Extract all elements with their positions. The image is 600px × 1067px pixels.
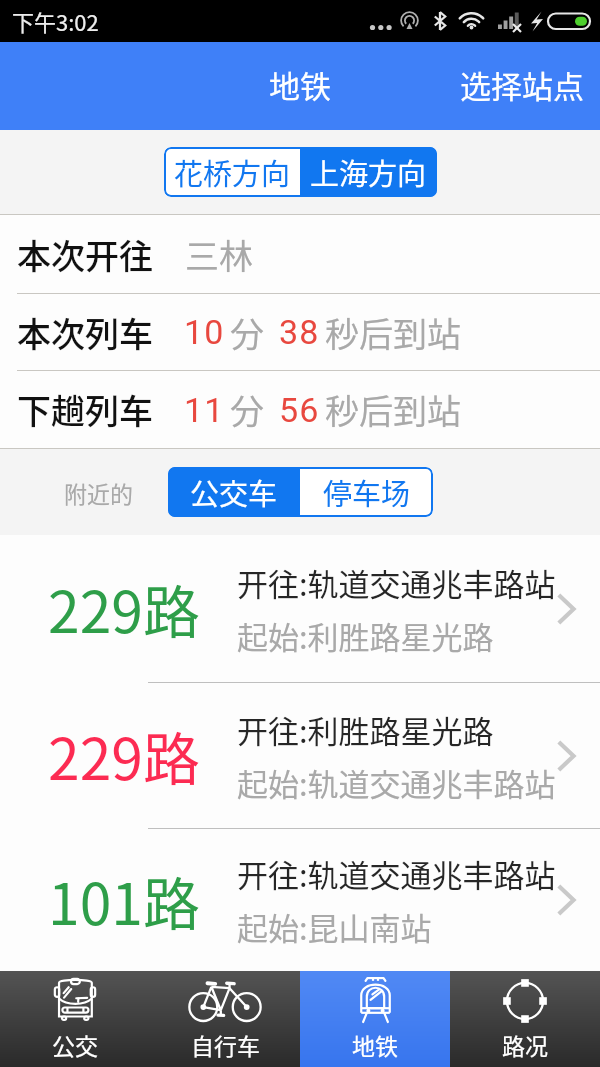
staticText: 229路 bbox=[48, 567, 200, 650]
staticText: 11 bbox=[184, 390, 225, 430]
button[interactable]: 229路 bbox=[0, 683, 600, 828]
staticText: 56 bbox=[279, 390, 320, 430]
other: 详情 bbox=[557, 742, 575, 770]
button[interactable]: 公交 bbox=[0, 971, 150, 1067]
staticText: 229路 bbox=[48, 714, 200, 797]
staticText: 开往:轨道交通兆丰路站 bbox=[237, 851, 556, 896]
staticText: 起始:利胜路星光路 bbox=[237, 613, 494, 658]
button[interactable]: 选择站点 bbox=[460, 62, 584, 107]
button[interactable]: 下趟列车 bbox=[0, 371, 600, 448]
button[interactable]: 公交车 bbox=[168, 467, 300, 517]
staticText: 分 bbox=[230, 385, 264, 434]
button[interactable]: 本次列车 bbox=[0, 294, 600, 370]
staticText: 地铁 bbox=[352, 1028, 398, 1061]
staticText: 38 bbox=[279, 312, 320, 352]
button[interactable]: 229路 bbox=[0, 535, 600, 682]
staticText: 本次列车 bbox=[17, 308, 153, 357]
button[interactable]: 101路 bbox=[0, 829, 600, 971]
button[interactable]: 停车场 bbox=[300, 467, 433, 517]
button[interactable]: 路况 bbox=[450, 971, 600, 1067]
staticText: 开往:利胜路星光路 bbox=[237, 707, 494, 752]
staticText: 停车场 bbox=[323, 471, 411, 513]
button[interactable]: 地铁 bbox=[269, 62, 331, 107]
button[interactable]: 自行车 bbox=[150, 971, 300, 1067]
staticText: 101路 bbox=[48, 859, 200, 942]
staticText: 下午3:02 bbox=[12, 5, 99, 37]
other: 详情 bbox=[557, 886, 575, 914]
staticText: 自行车 bbox=[191, 1028, 260, 1061]
staticText: 10 bbox=[184, 312, 225, 352]
button[interactable]: 本次开往 bbox=[0, 215, 600, 293]
staticText: 三林 bbox=[185, 230, 253, 279]
staticText: 公交 bbox=[52, 1028, 98, 1061]
staticText: 分 bbox=[230, 308, 264, 357]
other: 详情 bbox=[557, 595, 575, 623]
staticText: 附近的 bbox=[64, 476, 133, 509]
staticText: 本次开往 bbox=[17, 230, 153, 279]
staticText: 起始:昆山南站 bbox=[237, 904, 432, 949]
button[interactable]: 上海方向 bbox=[300, 147, 437, 197]
button[interactable]: 地铁 bbox=[300, 971, 450, 1067]
staticText: 秒后到站 bbox=[325, 308, 461, 357]
staticText: 起始:轨道交通兆丰路站 bbox=[237, 760, 556, 805]
button[interactable]: 花桥方向 bbox=[164, 147, 300, 197]
staticText: 上海方向 bbox=[310, 151, 427, 193]
staticText: 下趟列车 bbox=[17, 385, 153, 434]
staticText: 花桥方向 bbox=[174, 151, 291, 193]
staticText: 开往:轨道交通兆丰路站 bbox=[237, 560, 556, 605]
staticText: 公交车 bbox=[190, 471, 278, 513]
staticText: 秒后到站 bbox=[325, 385, 461, 434]
staticText: 路况 bbox=[502, 1028, 548, 1061]
